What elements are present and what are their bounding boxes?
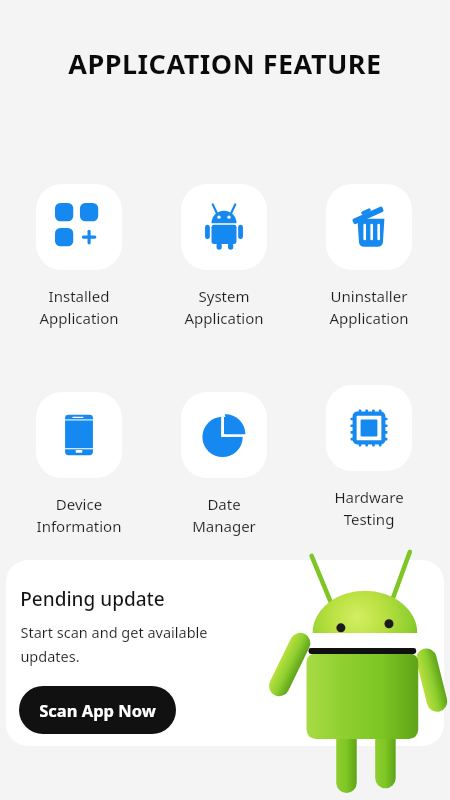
staticText: Application (297, 308, 441, 328)
staticText: Device (7, 494, 151, 514)
staticText: Information (7, 516, 151, 536)
button[interactable]: System Application (152, 184, 296, 328)
button[interactable]: Uninstaller Application (297, 184, 441, 328)
staticText: Manager (152, 516, 296, 536)
staticText: Testing (297, 509, 441, 529)
button[interactable]: Installed Application (7, 184, 151, 328)
button[interactable]: Hardware Testing (297, 385, 441, 529)
button[interactable]: Device Information (7, 392, 151, 536)
staticText: APPLICATION FEATURE (68, 45, 382, 82)
staticText: System (152, 286, 296, 306)
staticText: Pending update (20, 586, 165, 612)
staticText: updates. (20, 646, 80, 666)
staticText: Date (152, 494, 296, 514)
button[interactable]: Scan App Now (19, 686, 176, 734)
staticText: Start scan and get available (20, 622, 208, 642)
button[interactable]: Date Manager (152, 392, 296, 536)
staticText: Uninstaller (297, 286, 441, 306)
staticText: Scan App Now (39, 699, 156, 721)
staticText: Hardware (297, 487, 441, 507)
staticText: Installed (7, 286, 151, 306)
staticText: Application (7, 308, 151, 328)
staticText: Application (152, 308, 296, 328)
